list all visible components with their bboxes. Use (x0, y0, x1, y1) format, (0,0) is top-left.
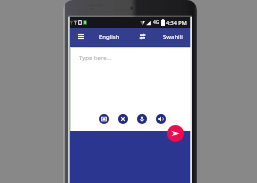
button[interactable]: Voice input (137, 114, 147, 124)
button[interactable]: English (91, 28, 127, 46)
button[interactable]: Copy text (99, 114, 109, 124)
staticText: Swahili (163, 33, 183, 41)
button[interactable]: Open navigation menu (75, 31, 86, 42)
button[interactable]: Clear text (118, 114, 128, 124)
button[interactable]: Swap languages (137, 31, 148, 42)
staticText: Type here... (79, 54, 112, 62)
staticText: 4G (153, 19, 160, 26)
button[interactable]: Translate (167, 125, 184, 142)
staticText: 4:34 PM (166, 19, 187, 26)
button[interactable]: Listen (156, 114, 166, 124)
button[interactable]: Swahili (155, 28, 191, 46)
staticText: English (99, 33, 120, 41)
